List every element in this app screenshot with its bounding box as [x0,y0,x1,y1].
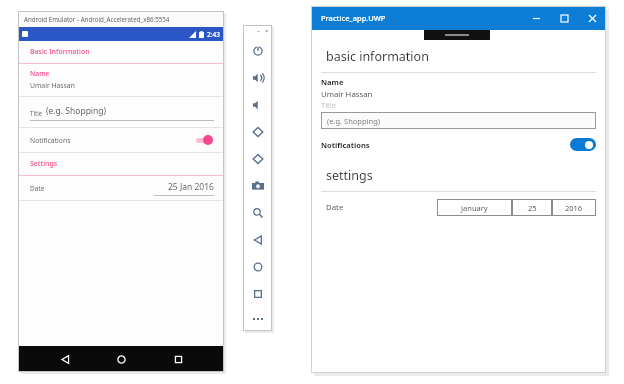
button[interactable]: 2016 [552,199,596,216]
button[interactable]: Power [243,37,272,64]
button[interactable]: Take screenshot [243,172,272,199]
button[interactable]: Close [578,6,606,30]
staticText: 25 [528,203,537,213]
staticText: basic information [326,48,429,65]
button[interactable]: Volume down [243,91,272,118]
button[interactable]: Back [243,226,272,253]
staticText: Title [30,109,43,117]
staticText: Settings [30,159,58,169]
button[interactable]: Notifications [321,138,596,151]
staticText: Umair Hassan [30,81,75,90]
button[interactable]: Notifications [18,128,224,153]
staticText: 2016 [565,203,583,213]
button[interactable]: Rotate left [243,118,272,145]
staticText: Date [30,184,45,193]
button[interactable]: Basic Information [18,41,224,64]
button[interactable]: Home [111,349,131,369]
button[interactable]: January [437,199,512,216]
button[interactable]: Back [55,349,75,369]
staticText: Umair Hassan [321,89,373,100]
staticText: 2:43 [207,30,220,39]
staticText: (e.g. Shopping) [46,105,107,117]
button[interactable]: Settings [18,153,224,176]
staticText: Notifications [321,140,370,150]
staticText: 25 Jan 2016 [168,181,214,193]
staticText: January [461,203,488,213]
button[interactable]: Recent apps [168,349,188,369]
staticText: Basic Information [30,47,90,57]
button[interactable]: Rotate right [243,145,272,172]
staticText: – [257,27,261,35]
button[interactable]: Overview [243,280,272,307]
staticText: Practice_app.UWP [321,13,386,23]
staticText: (e.g. Shopping) [327,116,381,126]
button[interactable]: Volume up [243,64,272,91]
staticText: Title [321,100,336,110]
button[interactable]: 25 [512,199,552,216]
staticText: Name [30,69,50,78]
button[interactable]: Title [18,97,224,128]
staticText: Name [321,77,344,87]
staticText: Date [326,202,344,213]
button[interactable]: Date [18,176,224,201]
button[interactable]: (e.g. Shopping) [321,112,596,129]
button[interactable]: More [243,307,272,331]
staticText: Notifications [30,136,71,145]
staticText: × [265,27,269,35]
button[interactable]: Home [243,253,272,280]
button[interactable]: Zoom [243,199,272,226]
button[interactable]: Maximize [550,6,578,30]
staticText: Android Emulator - Android_Accelerated_x… [24,15,170,23]
staticText: settings [326,167,373,184]
button[interactable]: Minimize [522,6,550,30]
button[interactable]: Name [18,64,224,97]
